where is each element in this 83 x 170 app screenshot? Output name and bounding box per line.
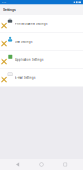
button[interactable]: Home	[35, 159, 47, 170]
button[interactable]: Printer/Scanner Settings	[0, 15, 83, 33]
staticText: Printer/Scanner Settings	[15, 22, 47, 25]
button[interactable]: Recent apps	[59, 159, 71, 170]
button[interactable]: Back	[12, 159, 24, 170]
staticText: 9:41	[2, 1, 6, 3]
button[interactable]: Application Settings	[0, 51, 83, 69]
button[interactable]: User Settings	[0, 33, 83, 51]
staticText: E-mail Settings	[15, 76, 35, 79]
staticText: User Settings	[15, 40, 32, 43]
staticText: Application Settings	[15, 58, 43, 61]
button[interactable]: E-mail Settings	[0, 69, 83, 87]
staticText: Settings	[3, 8, 16, 12]
